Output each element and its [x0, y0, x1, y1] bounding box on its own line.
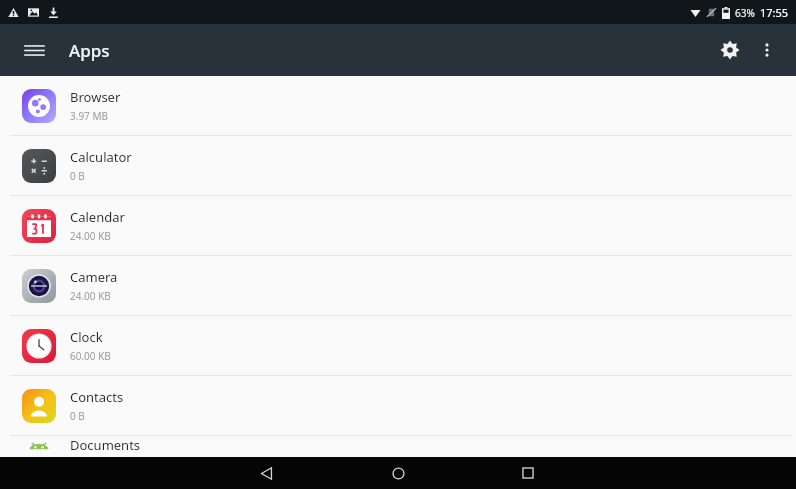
- staticText: Camera: [70, 268, 118, 286]
- staticText: 0 B: [70, 409, 85, 423]
- button[interactable]: Contacts: [0, 376, 796, 435]
- button[interactable]: Camera: [0, 256, 796, 315]
- button[interactable]: Home: [382, 457, 414, 489]
- button[interactable]: Documents: [0, 436, 796, 457]
- button[interactable]: Recent apps: [512, 457, 544, 489]
- staticText: Documents: [70, 436, 141, 454]
- staticText: Calculator: [70, 148, 132, 166]
- button[interactable]: Back: [250, 457, 282, 489]
- button[interactable]: Clock: [0, 316, 796, 375]
- staticText: 60.00 KB: [70, 349, 111, 363]
- button[interactable]: Calendar: [0, 196, 796, 255]
- staticText: Apps: [69, 39, 110, 62]
- button[interactable]: Open navigation menu: [18, 34, 50, 66]
- staticText: Calendar: [70, 208, 125, 226]
- staticText: 0 B: [70, 169, 85, 183]
- staticText: 17:55: [760, 5, 789, 20]
- staticText: Contacts: [70, 388, 124, 406]
- staticText: 63%: [735, 6, 755, 20]
- button[interactable]: More options: [750, 33, 784, 67]
- staticText: Clock: [70, 328, 103, 346]
- button[interactable]: Settings: [710, 30, 750, 70]
- button[interactable]: Calculator: [0, 136, 796, 195]
- button[interactable]: Browser: [0, 76, 796, 135]
- staticText: 24.00 KB: [70, 289, 111, 303]
- staticText: Browser: [70, 88, 121, 106]
- staticText: 3.97 MB: [70, 109, 109, 123]
- staticText: 24.00 KB: [70, 229, 111, 243]
